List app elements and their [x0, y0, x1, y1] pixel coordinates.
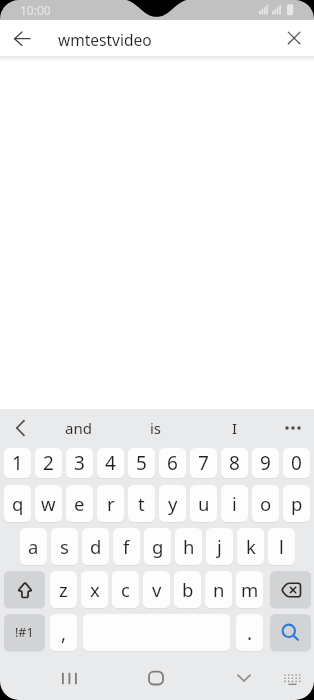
- button[interactable]: f: [113, 528, 140, 565]
- staticText: and: [65, 418, 92, 438]
- staticText: ,: [61, 620, 67, 646]
- button[interactable]: a: [20, 528, 47, 565]
- staticText: I: [232, 418, 238, 438]
- staticText: 9: [260, 450, 271, 476]
- button[interactable]: g: [144, 528, 171, 565]
- staticText: f: [123, 534, 130, 559]
- staticText: .: [247, 620, 253, 646]
- button[interactable]: x: [81, 571, 108, 608]
- staticText: l: [279, 534, 284, 559]
- button[interactable]: .: [236, 614, 263, 651]
- button[interactable]: wmtestvideo: [56, 21, 266, 57]
- button[interactable]: 1: [4, 448, 31, 478]
- button[interactable]: is: [126, 412, 186, 443]
- button[interactable]: 3: [66, 448, 93, 478]
- staticText: v: [152, 577, 162, 602]
- staticText: 10:00: [20, 2, 51, 18]
- button[interactable]: [4, 571, 45, 608]
- staticText: n: [213, 577, 225, 602]
- button[interactable]: c: [112, 571, 139, 608]
- button[interactable]: t: [128, 485, 155, 522]
- button[interactable]: I: [205, 412, 265, 443]
- staticText: h: [183, 534, 195, 559]
- button[interactable]: [4, 22, 40, 56]
- staticText: wmtestvideo: [58, 29, 152, 50]
- button[interactable]: [4, 412, 38, 443]
- button[interactable]: l: [268, 528, 295, 565]
- button[interactable]: d: [82, 528, 109, 565]
- button[interactable]: j: [206, 528, 233, 565]
- button[interactable]: b: [174, 571, 201, 608]
- staticText: u: [198, 491, 210, 516]
- staticText: r: [107, 491, 115, 516]
- button[interactable]: h: [175, 528, 202, 565]
- button[interactable]: [276, 21, 312, 55]
- button[interactable]: p: [283, 485, 310, 522]
- button[interactable]: 4: [97, 448, 124, 478]
- staticText: 7: [198, 450, 209, 476]
- staticText: 3: [74, 450, 85, 476]
- button[interactable]: 0: [283, 448, 310, 478]
- staticText: !#1: [15, 624, 34, 641]
- staticText: o: [260, 491, 272, 516]
- button[interactable]: [277, 665, 307, 693]
- staticText: i: [232, 491, 237, 516]
- staticText: b: [182, 577, 194, 602]
- staticText: w: [41, 491, 56, 516]
- staticText: c: [121, 577, 130, 602]
- button[interactable]: 7: [190, 448, 217, 478]
- staticText: s: [60, 534, 69, 559]
- button[interactable]: v: [143, 571, 170, 608]
- button[interactable]: i: [221, 485, 248, 522]
- staticText: is: [150, 418, 162, 438]
- staticText: g: [152, 534, 164, 559]
- button[interactable]: q: [4, 485, 31, 522]
- button[interactable]: [226, 662, 262, 694]
- staticText: 4: [105, 450, 116, 476]
- button[interactable]: 5: [128, 448, 155, 478]
- button[interactable]: 6: [159, 448, 186, 478]
- button[interactable]: [138, 662, 174, 694]
- staticText: 5: [136, 450, 147, 476]
- button[interactable]: n: [205, 571, 232, 608]
- button[interactable]: 9: [252, 448, 279, 478]
- staticText: y: [168, 491, 178, 516]
- button[interactable]: y: [159, 485, 186, 522]
- button[interactable]: [276, 412, 310, 443]
- button[interactable]: 8: [221, 448, 248, 478]
- staticText: t: [138, 491, 145, 516]
- button[interactable]: !#1: [4, 614, 45, 651]
- staticText: k: [246, 534, 256, 559]
- button[interactable]: w: [35, 485, 62, 522]
- staticText: d: [90, 534, 102, 559]
- staticText: a: [28, 534, 39, 559]
- button[interactable]: ,: [50, 614, 77, 651]
- staticText: 1: [12, 450, 23, 476]
- button[interactable]: k: [237, 528, 264, 565]
- staticText: x: [90, 577, 100, 602]
- button[interactable]: 2: [35, 448, 62, 478]
- button[interactable]: [52, 662, 88, 694]
- button[interactable]: [270, 614, 311, 651]
- staticText: z: [59, 577, 68, 602]
- staticText: 8: [229, 450, 240, 476]
- staticText: p: [291, 491, 303, 516]
- button[interactable]: and: [48, 412, 108, 443]
- staticText: 2: [43, 450, 54, 476]
- staticText: q: [12, 491, 24, 516]
- button[interactable]: [270, 571, 311, 608]
- staticText: 6: [167, 450, 178, 476]
- staticText: 0: [291, 450, 302, 476]
- button[interactable]: m: [236, 571, 263, 608]
- button[interactable]: z: [50, 571, 77, 608]
- button[interactable]: s: [51, 528, 78, 565]
- staticText: e: [74, 491, 85, 516]
- button[interactable]: e: [66, 485, 93, 522]
- button[interactable]: u: [190, 485, 217, 522]
- button[interactable]: o: [252, 485, 279, 522]
- staticText: j: [217, 534, 222, 559]
- staticText: m: [241, 577, 259, 602]
- button[interactable]: r: [97, 485, 124, 522]
